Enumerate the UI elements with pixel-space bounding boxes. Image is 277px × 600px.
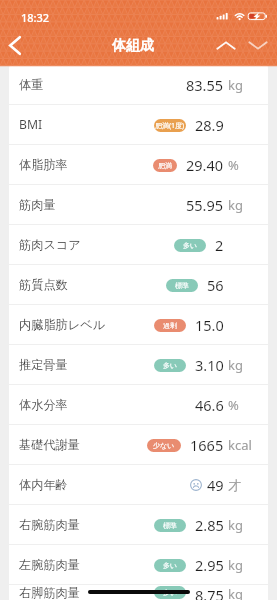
button[interactable]: Next record <box>242 26 274 65</box>
staticText: 3.10 <box>195 355 224 375</box>
button[interactable]: 筋質点数 <box>9 265 268 304</box>
staticText: 体重 <box>19 77 44 92</box>
staticText: 標準 <box>163 521 177 530</box>
staticText: 右腕筋肉量 <box>19 517 80 532</box>
staticText: 83.55 <box>186 75 224 95</box>
button[interactable]: Back <box>0 26 30 65</box>
staticText: 多い <box>163 588 178 597</box>
button[interactable]: 推定骨量 <box>9 345 268 384</box>
staticText: 筋肉量 <box>19 197 56 212</box>
button[interactable]: 右脚筋肉量 <box>9 585 268 600</box>
staticText: 28.9 <box>195 115 224 135</box>
staticText: 2 <box>215 235 224 255</box>
staticText: 体内年齢 <box>19 477 68 492</box>
staticText: 標準 <box>175 281 189 290</box>
staticText: 46.6 <box>195 395 224 415</box>
staticText: 内臓脂肪レベル <box>19 317 106 332</box>
button[interactable]: 体内年齢 <box>9 465 268 504</box>
button[interactable]: Previous record <box>210 26 242 65</box>
staticText: kg <box>228 556 243 574</box>
button[interactable]: 体水分率 <box>9 385 268 424</box>
staticText: 肥満 <box>158 161 172 170</box>
staticText: 多い <box>163 561 178 570</box>
staticText: % <box>228 396 239 414</box>
button[interactable]: 内臓脂肪レベル <box>9 305 268 344</box>
staticText: 筋肉スコア <box>19 237 81 252</box>
staticText: kg <box>228 516 243 534</box>
staticText: 少ない <box>153 441 175 450</box>
staticText: 右脚筋肉量 <box>19 585 80 600</box>
button[interactable]: 左腕筋肉量 <box>9 545 268 584</box>
button[interactable]: 基礎代謝量 <box>9 425 268 464</box>
staticText: 推定骨量 <box>19 357 68 372</box>
staticText: 過剰 <box>163 321 177 330</box>
button[interactable]: 筋肉量 <box>9 185 268 224</box>
button[interactable]: 体重 <box>9 65 268 104</box>
staticText: 左腕筋肉量 <box>19 557 80 572</box>
staticText: 8.75 <box>195 585 224 600</box>
staticText: 2.85 <box>195 515 224 535</box>
button[interactable]: 体脂肪率 <box>9 145 268 184</box>
staticText: 肥満(1度) <box>155 121 185 131</box>
staticText: 多い <box>163 361 178 370</box>
staticText: 才 <box>228 477 241 493</box>
button[interactable]: 右腕筋肉量 <box>9 505 268 544</box>
staticText: 多い <box>183 241 198 250</box>
staticText: 29.40 <box>186 155 224 175</box>
staticText: kg <box>228 585 243 600</box>
staticText: kg <box>228 356 243 374</box>
staticText: 56 <box>207 275 224 295</box>
staticText: 体水分率 <box>19 397 68 412</box>
staticText: 15.0 <box>195 315 224 335</box>
staticText: kg <box>228 76 243 94</box>
staticText: kg <box>228 196 243 214</box>
staticText: 体脂肪率 <box>19 157 68 172</box>
staticText: % <box>228 156 239 174</box>
staticText: 49 <box>207 475 224 495</box>
staticText: 基礎代謝量 <box>19 437 80 452</box>
staticText: kcal <box>228 436 252 454</box>
staticText: 体組成 <box>112 37 154 55</box>
staticText: BMI <box>19 116 43 133</box>
staticText: 1665 <box>190 435 224 455</box>
staticText: 18:32 <box>21 10 50 25</box>
staticText: 55.95 <box>186 195 224 215</box>
button[interactable]: 筋肉スコア <box>9 225 268 264</box>
staticText: 2.95 <box>195 555 224 575</box>
staticText: 筋質点数 <box>19 277 68 292</box>
button[interactable]: BMI <box>9 105 268 144</box>
